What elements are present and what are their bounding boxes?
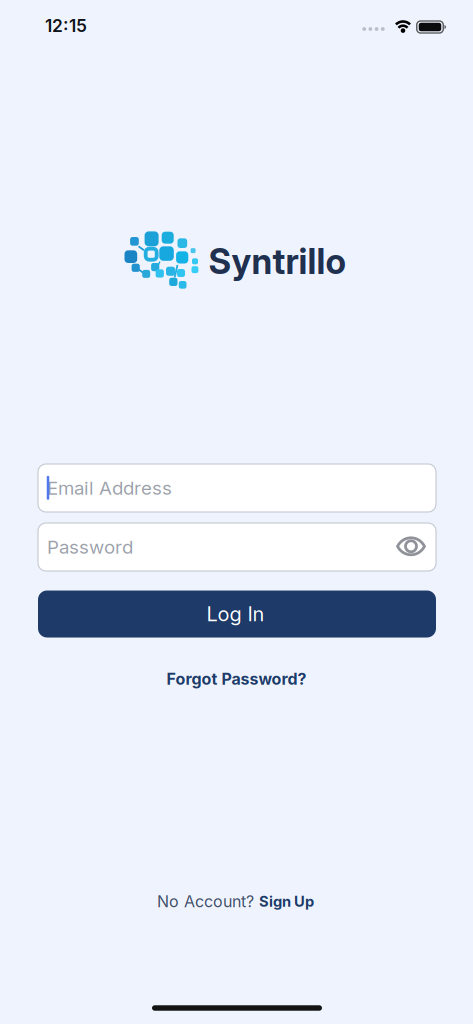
button[interactable]: Password: [38, 523, 436, 571]
staticText: 12:15: [45, 16, 87, 36]
staticText: Log In: [206, 602, 264, 626]
button[interactable]: Forgot Password?: [166, 670, 306, 688]
button[interactable]: Sign Up: [259, 893, 314, 910]
staticText: Sign Up: [259, 893, 314, 910]
staticText: No Account?: [157, 892, 254, 911]
staticText: Password: [47, 536, 133, 558]
button[interactable]: Email Address: [38, 464, 436, 512]
staticText: Email Address: [47, 477, 172, 499]
staticText: Forgot Password?: [166, 670, 306, 688]
staticText: Syntrillo: [208, 241, 345, 282]
button[interactable]: Log In: [38, 590, 436, 637]
